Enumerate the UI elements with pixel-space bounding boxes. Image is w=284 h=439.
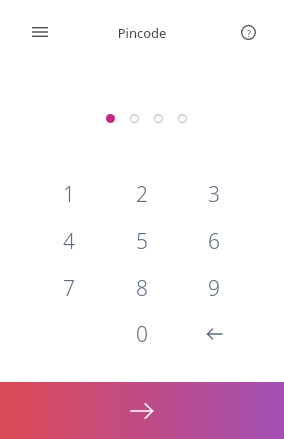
staticText: 2: [136, 180, 148, 209]
button[interactable]: Backspace: [182, 313, 246, 355]
staticText: 7: [63, 274, 75, 303]
button[interactable]: Menu: [24, 16, 56, 48]
button[interactable]: Help: [232, 16, 264, 48]
staticText: 4: [63, 227, 75, 256]
button[interactable]: 8: [110, 267, 174, 309]
staticText: 8: [136, 274, 148, 303]
staticText: 5: [136, 227, 148, 256]
staticText: 9: [208, 274, 220, 303]
button[interactable]: 0: [110, 313, 174, 355]
staticText: 6: [208, 227, 220, 256]
staticText: ?: [247, 27, 251, 39]
button[interactable]: Continue: [0, 382, 284, 439]
button[interactable]: 5: [110, 220, 174, 262]
button[interactable]: 6: [182, 220, 246, 262]
staticText: Pincode: [0, 24, 284, 42]
button[interactable]: 9: [182, 267, 246, 309]
button[interactable]: 4: [37, 220, 101, 262]
button[interactable]: 1: [37, 173, 101, 215]
staticText: 1: [63, 180, 75, 209]
button[interactable]: 2: [110, 173, 174, 215]
button[interactable]: 3: [182, 173, 246, 215]
staticText: 0: [136, 320, 148, 349]
button[interactable]: 7: [37, 267, 101, 309]
staticText: 3: [208, 180, 220, 209]
